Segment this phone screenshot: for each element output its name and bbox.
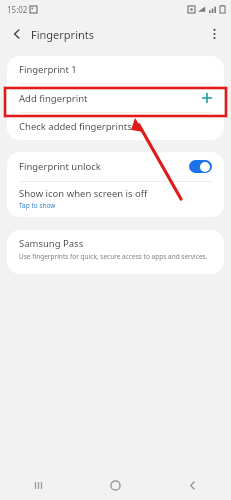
- button[interactable]: Add fingerprint: [7, 84, 224, 112]
- staticText: Show icon when screen is off: [19, 187, 148, 200]
- button[interactable]: Samsung Pass: [7, 230, 224, 274]
- button[interactable]: Show icon when screen is off: [7, 182, 224, 215]
- button[interactable]: More options: [203, 23, 225, 45]
- staticText: Tap to show: [19, 201, 56, 210]
- staticText: Use fingerprints for quick, secure acces…: [19, 252, 208, 261]
- button[interactable]: Fingerprint unlock: [7, 152, 224, 181]
- button[interactable]: Back: [154, 470, 231, 500]
- button[interactable]: Home: [77, 470, 154, 500]
- staticText: Fingerprints: [31, 27, 95, 42]
- staticText: Check added fingerprints: [19, 120, 132, 133]
- button[interactable]: Fingerprint unlock toggle: [189, 160, 212, 173]
- staticText: Fingerprint unlock: [19, 160, 189, 173]
- button[interactable]: Fingerprint 1: [7, 56, 224, 83]
- staticText: Fingerprint 1: [19, 63, 77, 76]
- button[interactable]: Back: [6, 23, 28, 45]
- staticText: 15:02: [7, 4, 28, 15]
- button[interactable]: Recents: [0, 470, 77, 500]
- button[interactable]: Check added fingerprints: [7, 113, 224, 140]
- staticText: Add fingerprint: [19, 92, 202, 105]
- staticText: Samsung Pass: [19, 237, 84, 250]
